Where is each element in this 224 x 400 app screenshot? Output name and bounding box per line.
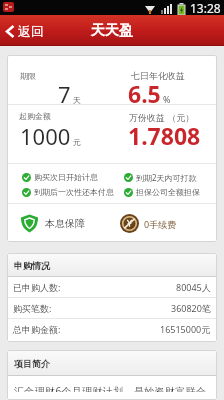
staticText: 0手续费 [144,218,177,230]
staticText: 总申购金额: [13,323,61,335]
button[interactable]: 已申购人数: [7,277,217,298]
button[interactable]: 总申购金额: [7,319,217,339]
staticText: 天天盈 [91,22,133,40]
staticText: % [163,93,171,105]
staticText: 1.7808 [128,120,201,151]
staticText: 本息保障 [45,217,85,230]
staticText: 13:28 [190,0,221,15]
staticText: 期限 [20,71,36,81]
staticText: 6.5 [128,78,161,109]
staticText: 到期2天内可打款 [136,172,197,183]
staticText: 万份收益 （元） [129,111,195,123]
button[interactable]: 购买笔数: [7,298,217,319]
staticText: 7 [58,79,71,109]
button[interactable]: 返回 [4,23,44,39]
staticText: 起购金额 [19,111,51,121]
button[interactable]: 0手续费 [120,214,177,233]
staticText: 到期后一次性还本付息 [34,187,114,197]
staticText: 1000 [20,121,71,151]
staticText: 已申购人数: [13,281,61,293]
staticText: 16515000元 [160,323,211,335]
staticText: 担保公司全额担保 [136,187,200,197]
staticText: 360820笔 [171,302,211,314]
staticText: 项目简介 [14,358,50,369]
staticText: 申购情况 [14,260,50,271]
staticText: 元 [73,137,81,147]
staticText: 80045人 [176,281,211,293]
button[interactable]: 本息保障 [20,214,85,233]
staticText: 七日年化收益 [131,70,185,81]
staticText: 购买次日开始计息 [34,172,98,182]
staticText: 汇金理财6个月理财计划，是妙资财富联合政府 [14,384,215,392]
staticText: 购买笔数: [13,302,52,314]
staticText: 天 [73,95,81,105]
staticText: 返回 [18,23,44,39]
